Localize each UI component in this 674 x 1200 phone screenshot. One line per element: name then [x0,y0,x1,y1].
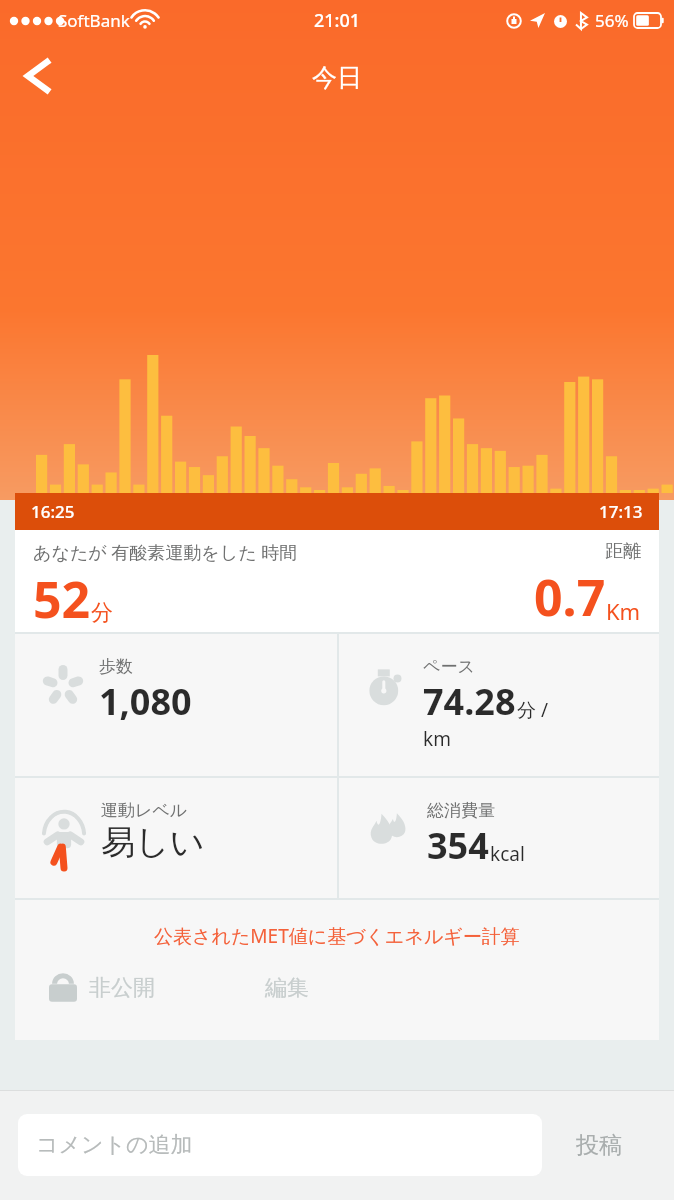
button[interactable]: Back [8,47,66,105]
button[interactable]: コメントの追加 [18,1114,542,1176]
staticText: km [423,726,451,752]
staticText: 分 / [517,697,549,723]
staticText: 今日 [312,62,362,93]
staticText: kcal [490,841,525,867]
staticText: 1,080 [99,677,192,726]
staticText: あなたが 有酸素運動をした 時間 [33,540,298,565]
staticText: 354 [427,821,489,870]
staticText: 公表されたMET値に基づくエネルギー計算 [154,923,520,949]
staticText: 非公開 [89,974,155,1002]
staticText: 総消費量 [427,800,495,821]
staticText: コメントの追加 [36,1131,193,1159]
staticText: 74.28 [423,677,516,726]
staticText: 運動レベル [101,800,188,821]
staticText: SoftBank [58,9,130,32]
staticText: 21:01 [314,8,361,33]
button[interactable]: ペース [339,634,659,776]
button[interactable]: 総消費量 [339,778,659,898]
staticText: 易しい [101,821,205,864]
staticText: 56% [595,9,629,32]
staticText: ペース [423,656,475,677]
button[interactable]: 公表されたMET値に基づくエネルギー計算 [15,900,659,972]
staticText: 16:25 [31,500,75,523]
button[interactable]: 投稿 [542,1114,656,1176]
staticText: 17:13 [599,500,643,523]
staticText: 投稿 [576,1131,622,1160]
staticText: 0.7 [534,563,606,631]
button[interactable]: 編集 [265,974,309,1002]
staticText: 距離 [605,540,641,563]
button[interactable]: 歩数 [15,634,337,776]
button[interactable]: 運動レベル [15,778,337,898]
staticText: 52 [33,565,91,632]
staticText: Km [606,596,641,626]
staticText: 歩数 [99,656,133,677]
staticText: 分 [91,599,113,627]
button[interactable]: 非公開 [49,972,155,1004]
